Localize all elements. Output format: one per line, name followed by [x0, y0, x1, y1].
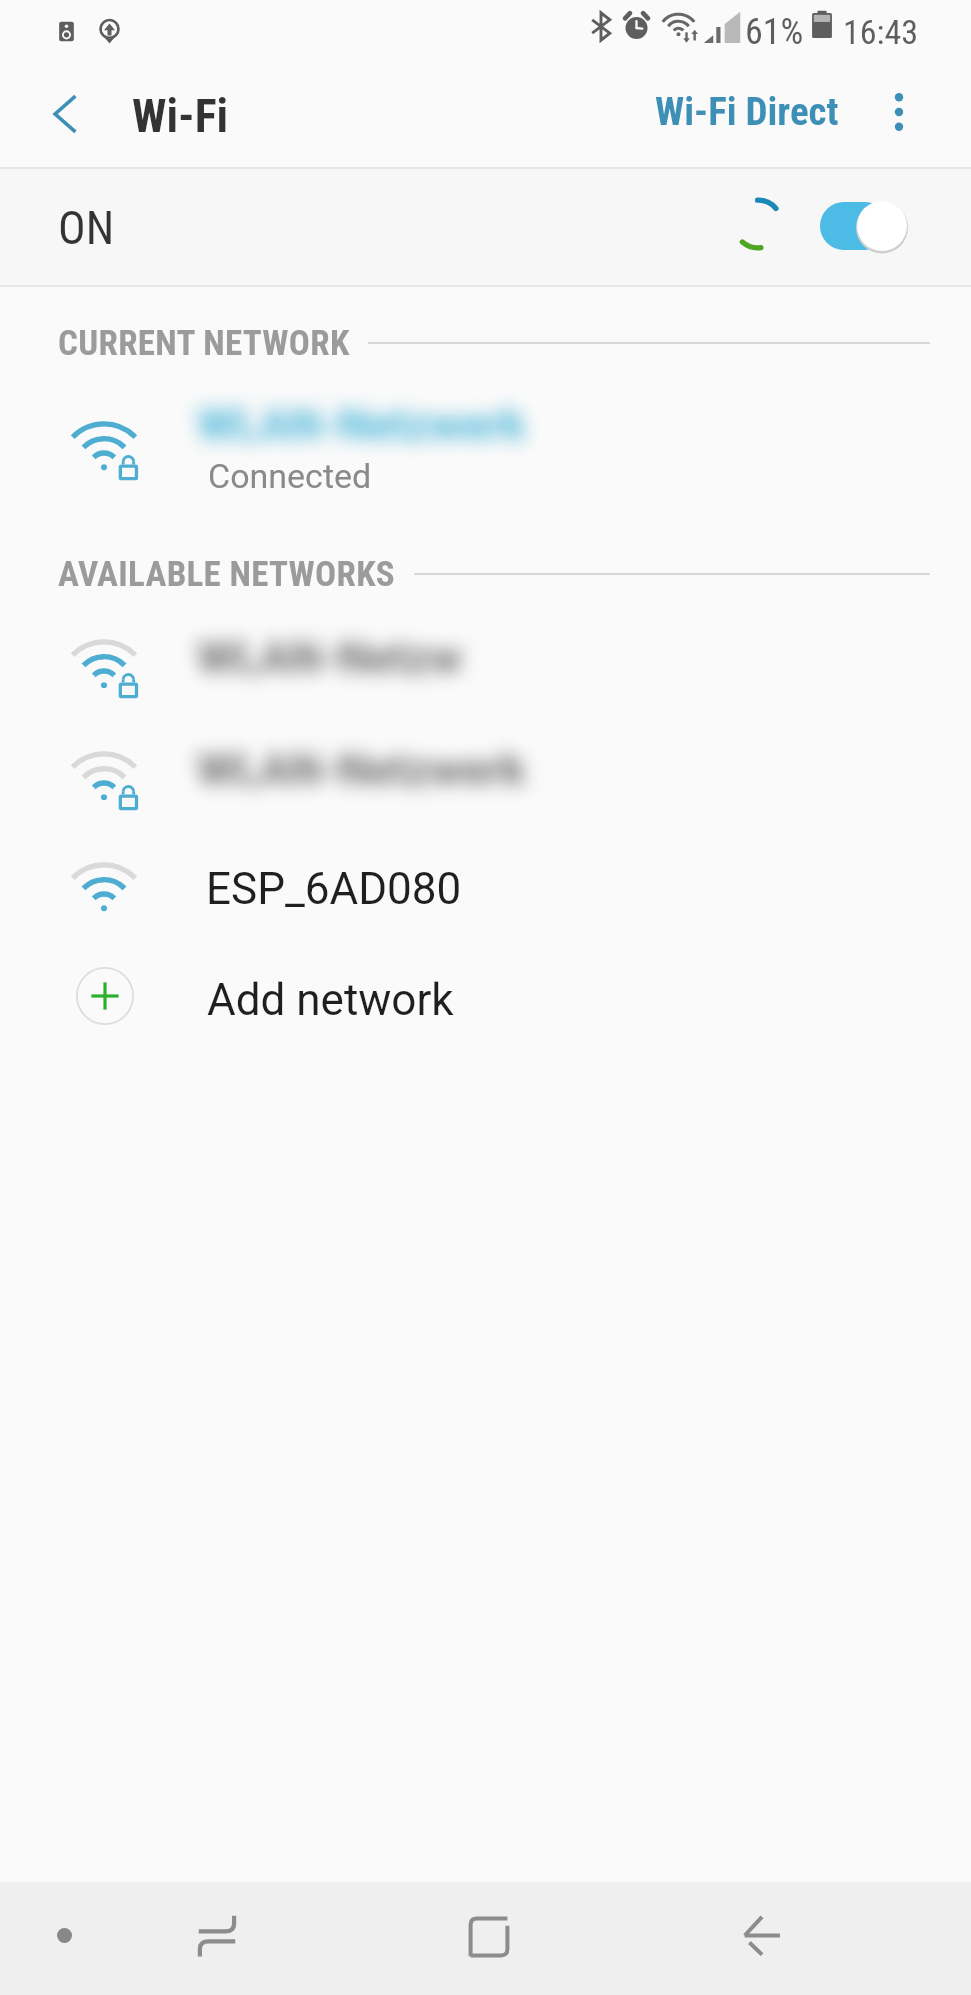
staticText: ESP_6AD080	[206, 863, 462, 915]
staticText: WLAN-Netzwerk	[197, 399, 526, 451]
staticText: Wi-Fi Direct	[655, 89, 839, 135]
button[interactable]: ESP_6AD080	[0, 835, 971, 945]
staticText: WLAN-Netzw	[197, 632, 463, 684]
button[interactable]: Recent apps	[174, 1882, 258, 1995]
button[interactable]: WLAN-Netzwerk	[0, 724, 971, 834]
staticText: Add network	[207, 974, 454, 1026]
staticText: ON	[58, 201, 115, 255]
staticText: 16:43	[843, 12, 919, 52]
staticText: 61%	[745, 11, 804, 53]
button[interactable]: Show menu	[24, 1882, 104, 1995]
staticText: AVAILABLE NETWORKS	[58, 554, 396, 595]
staticText: WLAN-Netzwerk	[197, 744, 526, 796]
button[interactable]: Back	[719, 1882, 803, 1995]
staticText: Wi-Fi	[132, 89, 229, 143]
button[interactable]: Navigate up	[33, 82, 97, 146]
staticText: CURRENT NETWORK	[58, 323, 350, 364]
button[interactable]: More options	[867, 80, 931, 144]
button[interactable]: Add network	[0, 941, 971, 1051]
button[interactable]: Home	[446, 1882, 530, 1995]
staticText: Connected	[208, 456, 372, 496]
button[interactable]: Wi-Fi Direct	[639, 79, 855, 145]
button[interactable]: WLAN-Netzwerk	[0, 380, 971, 520]
button[interactable]: WLAN-Netzw	[0, 612, 971, 722]
button[interactable]: ON	[0, 169, 971, 285]
